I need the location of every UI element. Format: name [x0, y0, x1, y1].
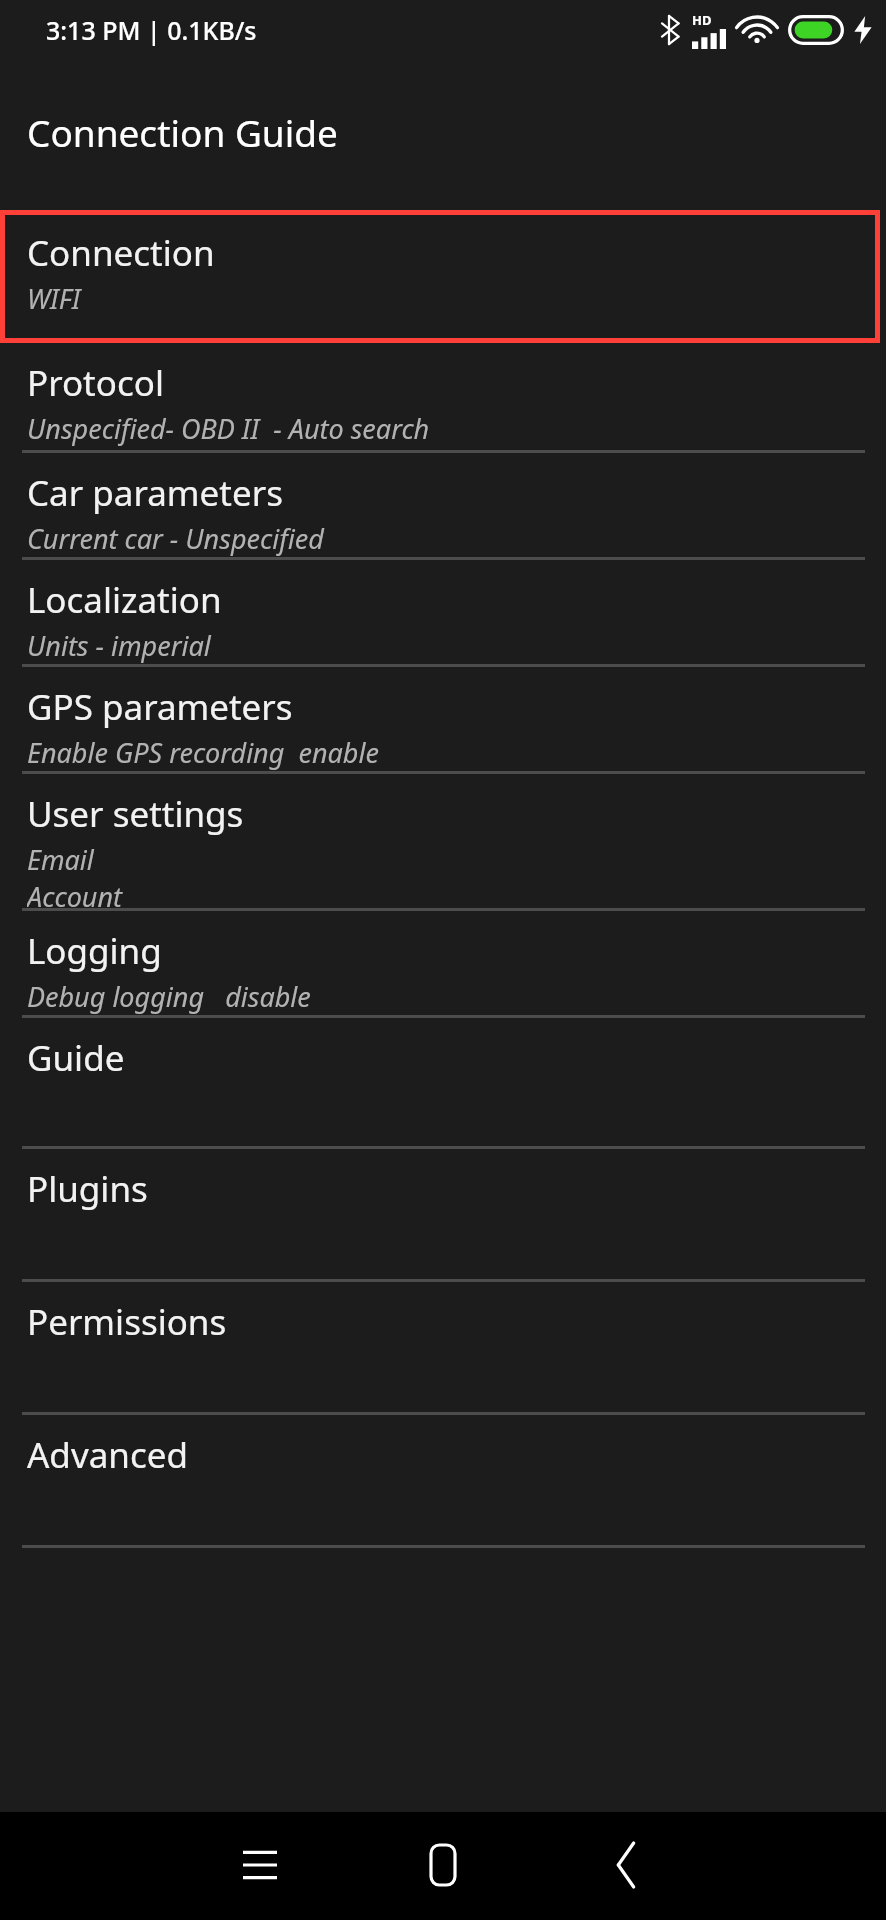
staticText: Unspecified- OBD II - Auto search	[27, 410, 430, 447]
button[interactable]: Car parameters	[0, 453, 886, 557]
button[interactable]: Permissions	[0, 1282, 886, 1412]
button[interactable]	[0, 210, 886, 343]
button[interactable]: User settings	[0, 774, 886, 908]
staticText: Debug logging disable	[27, 978, 311, 1015]
staticText: Enable GPS recording enable	[27, 734, 379, 771]
staticText: Logging	[27, 927, 162, 975]
staticText: Connection	[27, 229, 215, 277]
button[interactable]: GPS parameters	[0, 667, 886, 771]
button[interactable]: Logging	[0, 911, 886, 1015]
staticText: GPS parameters	[27, 683, 293, 731]
staticText: Current car - Unspecified	[27, 520, 324, 557]
staticText: Localization	[27, 576, 222, 624]
staticText: Car parameters	[27, 469, 283, 517]
button[interactable]: Recent apps	[205, 1811, 315, 1919]
button[interactable]: Connection	[0, 213, 886, 343]
staticText: Advanced	[27, 1431, 189, 1479]
button[interactable]: Guide	[0, 1018, 886, 1146]
staticText: Permissions	[27, 1298, 227, 1346]
button[interactable]: Plugins	[0, 1149, 886, 1279]
staticText: Units - imperial	[27, 627, 211, 664]
staticText: User settings	[27, 790, 244, 838]
staticText: HD	[692, 11, 712, 29]
staticText: WIFI	[27, 280, 81, 317]
button[interactable]: Home	[388, 1811, 498, 1919]
staticText: Connection Guide	[27, 107, 338, 157]
staticText: Plugins	[27, 1165, 148, 1213]
staticText: Protocol	[27, 359, 164, 407]
button[interactable]: Advanced	[0, 1415, 886, 1545]
button[interactable]: Protocol	[0, 343, 886, 450]
staticText: Account	[27, 878, 123, 908]
button[interactable]: Localization	[0, 560, 886, 664]
staticText: Guide	[27, 1034, 125, 1082]
staticText: Email	[27, 841, 94, 878]
button[interactable]: Back	[571, 1811, 681, 1919]
staticText: 3:13 PM | 0.1KB/s	[46, 13, 257, 47]
